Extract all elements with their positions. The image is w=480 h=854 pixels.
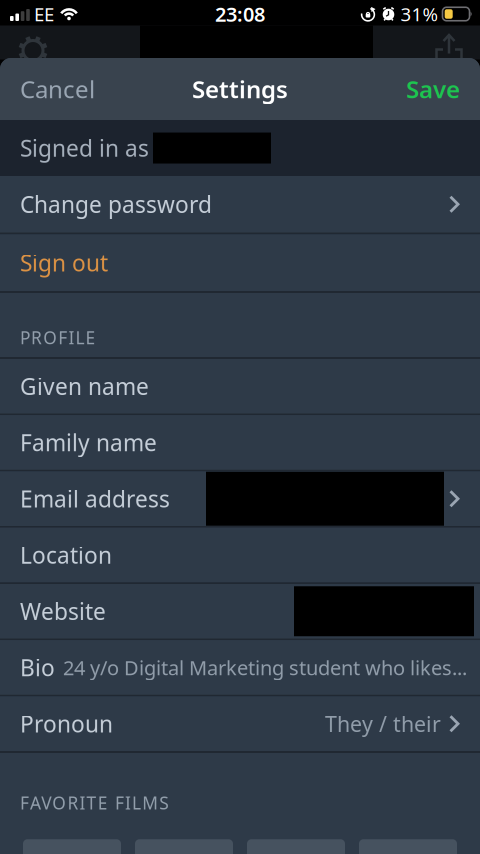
button[interactable]: Location <box>0 528 480 582</box>
staticText: EE <box>34 2 54 26</box>
staticText: Settings <box>192 73 288 105</box>
button[interactable]: Save <box>406 73 460 105</box>
button[interactable]: Sign out <box>0 234 480 291</box>
staticText: Cancel <box>20 73 95 105</box>
button[interactable]: Cancel <box>20 73 95 105</box>
staticText: Family name <box>20 427 157 457</box>
button[interactable]: Family name <box>0 415 480 470</box>
staticText: 24 y/o Digital Marketing student who lik… <box>63 654 467 681</box>
staticText: Email address <box>20 484 170 514</box>
staticText: FAVORITE FILMS <box>20 791 169 814</box>
staticText: Save <box>406 73 460 105</box>
staticText: PROFILE <box>20 326 96 349</box>
staticText: Location <box>20 540 112 570</box>
button[interactable]: Website <box>0 584 480 638</box>
staticText: Change password <box>20 189 212 219</box>
button[interactable]: Given name <box>0 359 480 413</box>
staticText: Website <box>20 596 106 626</box>
staticText: Given name <box>20 371 149 401</box>
button[interactable]: Change password <box>0 176 480 232</box>
staticText: Bio <box>20 652 55 682</box>
staticText: Pronoun <box>20 709 113 739</box>
button[interactable]: Bio <box>0 640 480 695</box>
staticText: Signed in as <box>20 133 149 163</box>
staticText: 31% <box>400 2 438 26</box>
button[interactable]: Email address <box>0 471 480 526</box>
button[interactable]: Pronoun <box>0 696 480 751</box>
staticText: Sign out <box>20 248 108 278</box>
staticText: 23:08 <box>215 1 265 27</box>
staticText: They / their <box>325 710 441 738</box>
